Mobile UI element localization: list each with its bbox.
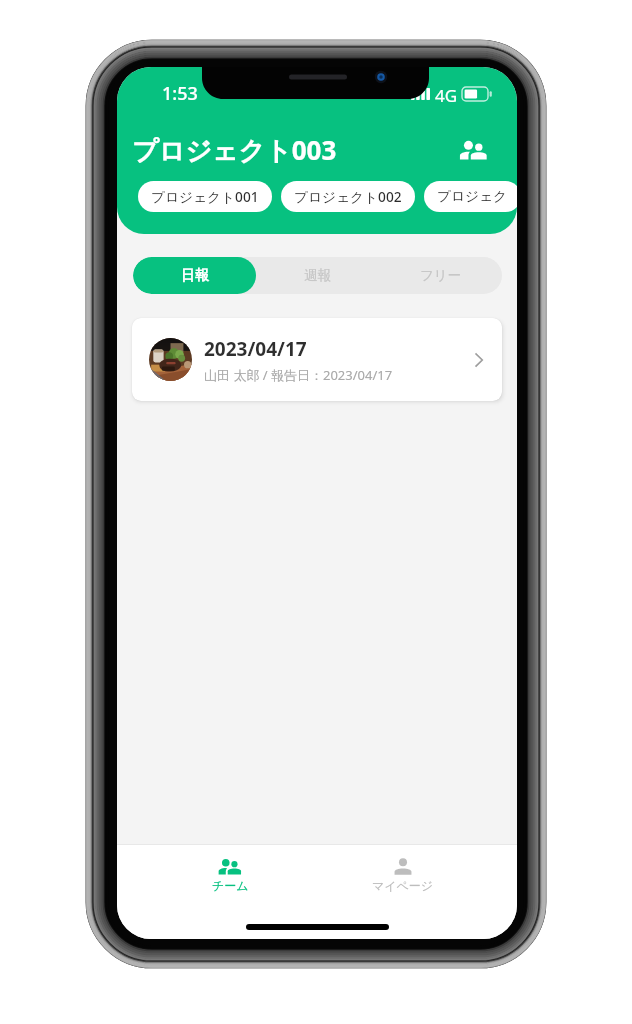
button[interactable]: 2023/04/17 <box>132 318 502 401</box>
staticText: フリー <box>420 267 462 284</box>
staticText: 4G <box>435 84 458 107</box>
button[interactable]: プロジェク <box>424 181 517 212</box>
button[interactable]: マイページ <box>363 854 443 895</box>
button[interactable]: Members <box>451 128 495 172</box>
staticText: マイページ <box>372 878 434 893</box>
staticText: プロジェクト002 <box>294 187 402 206</box>
staticText: 日報 <box>181 267 209 285</box>
button[interactable]: プロジェクト002 <box>281 181 415 212</box>
staticText: プロジェク <box>437 188 508 205</box>
button[interactable]: 週報 <box>256 257 379 294</box>
button[interactable]: チーム <box>190 854 270 895</box>
staticText: チーム <box>212 878 249 893</box>
staticText: 山田 太郎 / 報告日：2023/04/17 <box>204 366 393 384</box>
staticText: 週報 <box>304 267 331 284</box>
staticText: プロジェクト001 <box>151 187 259 206</box>
staticText: プロジェクト003 <box>132 132 337 168</box>
button[interactable]: フリー <box>379 257 502 294</box>
staticText: 1:53 <box>162 81 198 106</box>
staticText: 2023/04/17 <box>204 336 307 362</box>
button[interactable]: 日報 <box>133 257 256 294</box>
button[interactable]: プロジェクト001 <box>138 181 272 212</box>
